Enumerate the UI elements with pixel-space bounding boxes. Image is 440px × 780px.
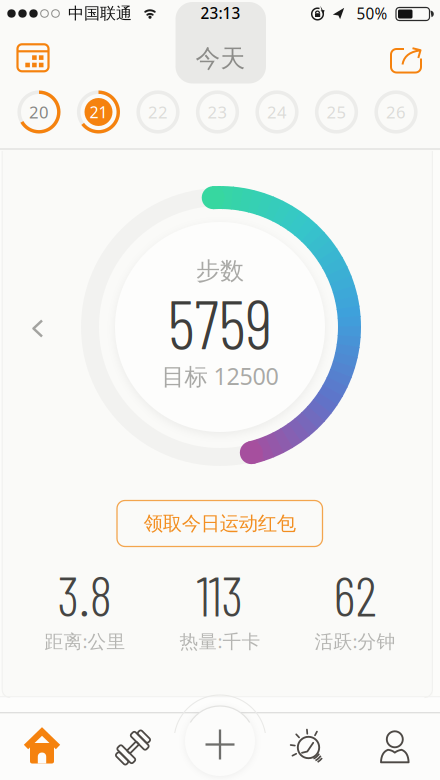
staticText: 23 — [207, 101, 227, 123]
staticText: 26 — [386, 101, 406, 123]
staticText: 23:13 — [200, 3, 240, 23]
staticText: 步数 — [196, 256, 244, 286]
staticText: 25 — [326, 101, 346, 123]
staticText: 50% — [356, 3, 387, 24]
staticText: 21 — [89, 101, 107, 123]
staticText: 20 — [29, 101, 49, 123]
staticText: 活跃:分钟 — [314, 628, 395, 654]
staticText: 5759 — [167, 281, 272, 363]
staticText: 今天 — [195, 43, 245, 74]
staticText: 113 — [196, 563, 243, 627]
staticText: 22 — [148, 101, 168, 123]
staticText: 3.8 — [57, 563, 112, 627]
staticText: 热量:千卡 — [179, 628, 260, 654]
staticText: 距离:公里 — [44, 628, 125, 654]
staticText: 62 — [333, 563, 376, 627]
staticText: 领取今日运动红包 — [144, 511, 296, 536]
staticText: 24 — [267, 101, 287, 123]
staticText: 中国联通 — [68, 3, 132, 24]
staticText: 目标 12500 — [161, 360, 278, 392]
